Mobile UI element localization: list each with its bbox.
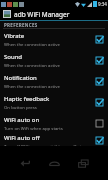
staticText: Sound	[4, 53, 23, 61]
button[interactable]: Vibrate	[0, 29, 108, 50]
button[interactable]: Checked	[94, 55, 105, 66]
button[interactable]: Back	[15, 153, 35, 173]
button[interactable]: WiFi auto on	[0, 113, 108, 134]
button[interactable]: Unchecked	[94, 118, 105, 129]
button[interactable]: Sound	[0, 50, 108, 71]
staticText: When the connection active	[4, 83, 60, 89]
button[interactable]: Checked	[94, 135, 105, 146]
staticText: Haptic feedback	[4, 95, 50, 103]
button[interactable]: Home	[44, 153, 64, 173]
staticText: adb WiFi Manager	[14, 10, 70, 19]
staticText: On button press	[4, 104, 37, 110]
staticText: Vibrate	[4, 32, 25, 40]
button[interactable]: WiFi auto off	[0, 134, 108, 146]
staticText: PREFERENCES	[4, 22, 38, 28]
staticText: Turn off WiFi on app exit if it was off …	[4, 143, 91, 146]
button[interactable]: adb WiFi Manager	[0, 8, 108, 20]
button[interactable]: Haptic feedback	[0, 92, 108, 113]
staticText: When the connection active	[4, 41, 60, 47]
button[interactable]: Notification	[0, 71, 108, 92]
button[interactable]: Checked	[94, 34, 105, 45]
button[interactable]: Recent apps	[73, 153, 93, 173]
button[interactable]: Checked	[94, 76, 105, 87]
staticText: WiFi auto on	[4, 116, 40, 124]
staticText: Turn on WiFi when app starts	[4, 125, 63, 131]
staticText: Notification	[4, 74, 37, 82]
staticText: When the connection active	[4, 62, 60, 68]
staticText: 9:34	[98, 1, 107, 7]
staticText: WiFi auto off	[4, 134, 40, 142]
button[interactable]: Checked	[94, 97, 105, 108]
